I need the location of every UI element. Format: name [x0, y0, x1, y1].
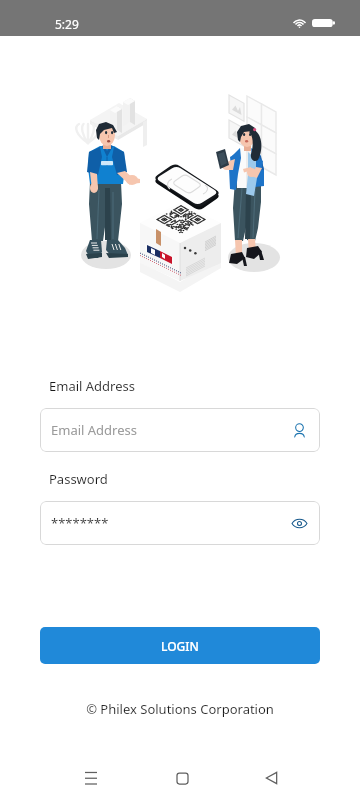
staticText: 5:29 [55, 16, 79, 32]
staticText: © Philex Solutions Corporation [0, 700, 360, 718]
staticText: Email Address [49, 377, 135, 395]
button[interactable]: Recents [73, 760, 109, 796]
button[interactable]: Home [164, 760, 200, 796]
staticText: Password [49, 470, 108, 488]
staticText: Email Address [51, 421, 137, 439]
other: Battery [312, 17, 335, 29]
other: User [291, 422, 308, 439]
button[interactable]: LOGIN [40, 627, 320, 664]
button[interactable]: ******** [40, 501, 320, 545]
other: Show password [291, 515, 308, 532]
other: Wi-Fi [292, 17, 307, 29]
button[interactable]: Email Address [40, 408, 320, 452]
staticText: ******** [51, 514, 109, 532]
staticText: LOGIN [161, 638, 199, 654]
button[interactable]: Back [253, 760, 289, 796]
